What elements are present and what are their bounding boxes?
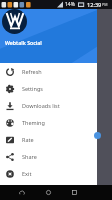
staticText: Rate bbox=[22, 136, 34, 143]
button[interactable]: Theming bbox=[0, 114, 97, 131]
staticText: Settings bbox=[22, 85, 43, 92]
staticText: Theming bbox=[22, 119, 45, 126]
staticText: 14% bbox=[65, 1, 75, 8]
staticText: Exit bbox=[22, 170, 32, 177]
staticText: Downloads list bbox=[22, 102, 60, 109]
button[interactable]: Exit bbox=[0, 165, 97, 182]
button[interactable]: Share bbox=[0, 148, 97, 165]
staticText: 12:39 bbox=[87, 1, 102, 9]
staticText: Webtalk Social bbox=[5, 39, 42, 46]
button[interactable]: Settings bbox=[0, 80, 97, 97]
staticText: PM bbox=[102, 2, 108, 7]
button[interactable]: Refresh bbox=[0, 63, 97, 80]
button[interactable]: Compose bbox=[94, 132, 101, 139]
button[interactable]: Back bbox=[10, 185, 34, 200]
button[interactable]: Recents bbox=[62, 185, 86, 200]
staticText: Refresh bbox=[22, 68, 42, 75]
button[interactable]: Rate bbox=[0, 131, 97, 148]
staticText: Share bbox=[22, 153, 37, 160]
button[interactable]: Downloads list bbox=[0, 97, 97, 114]
button[interactable]: Home bbox=[36, 185, 60, 200]
